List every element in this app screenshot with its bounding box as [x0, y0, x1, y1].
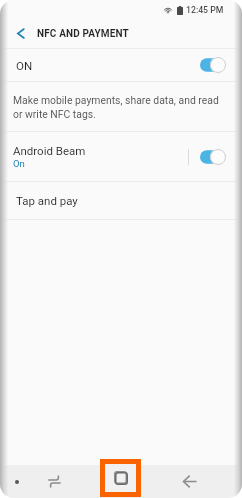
staticText: On [13, 158, 25, 169]
button[interactable]: Tap and pay [0, 182, 242, 219]
button[interactable]: More options [7, 465, 27, 498]
button[interactable]: Back [0, 20, 36, 48]
button[interactable]: ON [0, 49, 242, 81]
staticText: Make mobile payments, share data, and re… [13, 94, 219, 121]
button[interactable]: Android Beam [0, 132, 242, 181]
staticText: ON [16, 59, 33, 72]
button[interactable]: Toggle [200, 57, 226, 73]
button[interactable]: Home [105, 464, 136, 492]
button[interactable]: Recent apps [40, 465, 68, 498]
staticText: Android Beam [13, 144, 86, 157]
staticText: NFC AND PAYMENT [37, 28, 129, 40]
button[interactable]: Toggle [200, 149, 226, 165]
staticText: Tap and pay [16, 194, 78, 207]
button[interactable]: Back [176, 465, 204, 498]
staticText: 12:45 PM [186, 5, 224, 15]
